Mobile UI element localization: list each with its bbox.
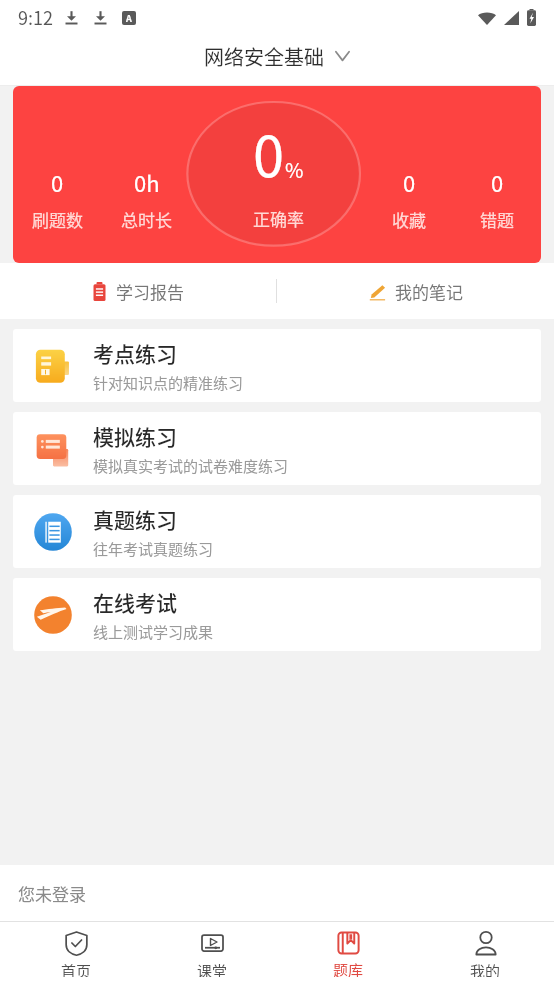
- staticText: 总时长: [121, 207, 172, 232]
- staticText: A: [126, 12, 132, 25]
- button[interactable]: 网络安全基础: [204, 42, 350, 71]
- staticText: 在线考试: [93, 587, 177, 617]
- staticText: 首页: [61, 960, 92, 977]
- button[interactable]: 首页: [8, 922, 144, 984]
- staticText: 0h: [134, 166, 160, 198]
- staticText: 真题练习: [93, 504, 177, 534]
- button[interactable]: 模拟练习: [13, 412, 541, 485]
- button[interactable]: 课堂: [144, 922, 280, 984]
- staticText: 我的笔记: [395, 279, 463, 304]
- staticText: 正确率: [253, 206, 304, 231]
- button[interactable]: 我的笔记: [368, 279, 463, 304]
- staticText: 网络安全基础: [204, 42, 324, 71]
- button[interactable]: 在线考试: [13, 578, 541, 651]
- button[interactable]: 学习报告: [92, 279, 184, 304]
- staticText: 针对知识点的精准练习: [93, 372, 244, 394]
- staticText: 线上测试学习成果: [93, 621, 214, 643]
- staticText: 收藏: [392, 207, 426, 232]
- staticText: 0: [253, 112, 285, 193]
- staticText: 考点练习: [93, 338, 177, 368]
- staticText: 往年考试真题练习: [93, 538, 214, 560]
- button[interactable]: 考点练习: [13, 329, 541, 402]
- staticText: %: [285, 155, 304, 184]
- staticText: 模拟练习: [93, 421, 177, 451]
- staticText: 您未登录: [18, 881, 86, 906]
- button[interactable]: 真题练习: [13, 495, 541, 568]
- staticText: 题库: [333, 959, 364, 977]
- staticText: 课堂: [197, 960, 228, 977]
- staticText: 我的: [470, 960, 501, 977]
- staticText: 9:12: [18, 4, 53, 30]
- staticText: 错题: [480, 207, 514, 232]
- staticText: 刷题数: [32, 207, 83, 232]
- staticText: 0: [51, 166, 64, 198]
- button[interactable]: 我的: [417, 922, 554, 984]
- staticText: 学习报告: [116, 279, 184, 304]
- staticText: 模拟真实考试的试卷难度练习: [93, 455, 289, 477]
- button[interactable]: 题库: [280, 922, 417, 984]
- staticText: 0: [491, 166, 504, 198]
- staticText: 0: [403, 166, 416, 198]
